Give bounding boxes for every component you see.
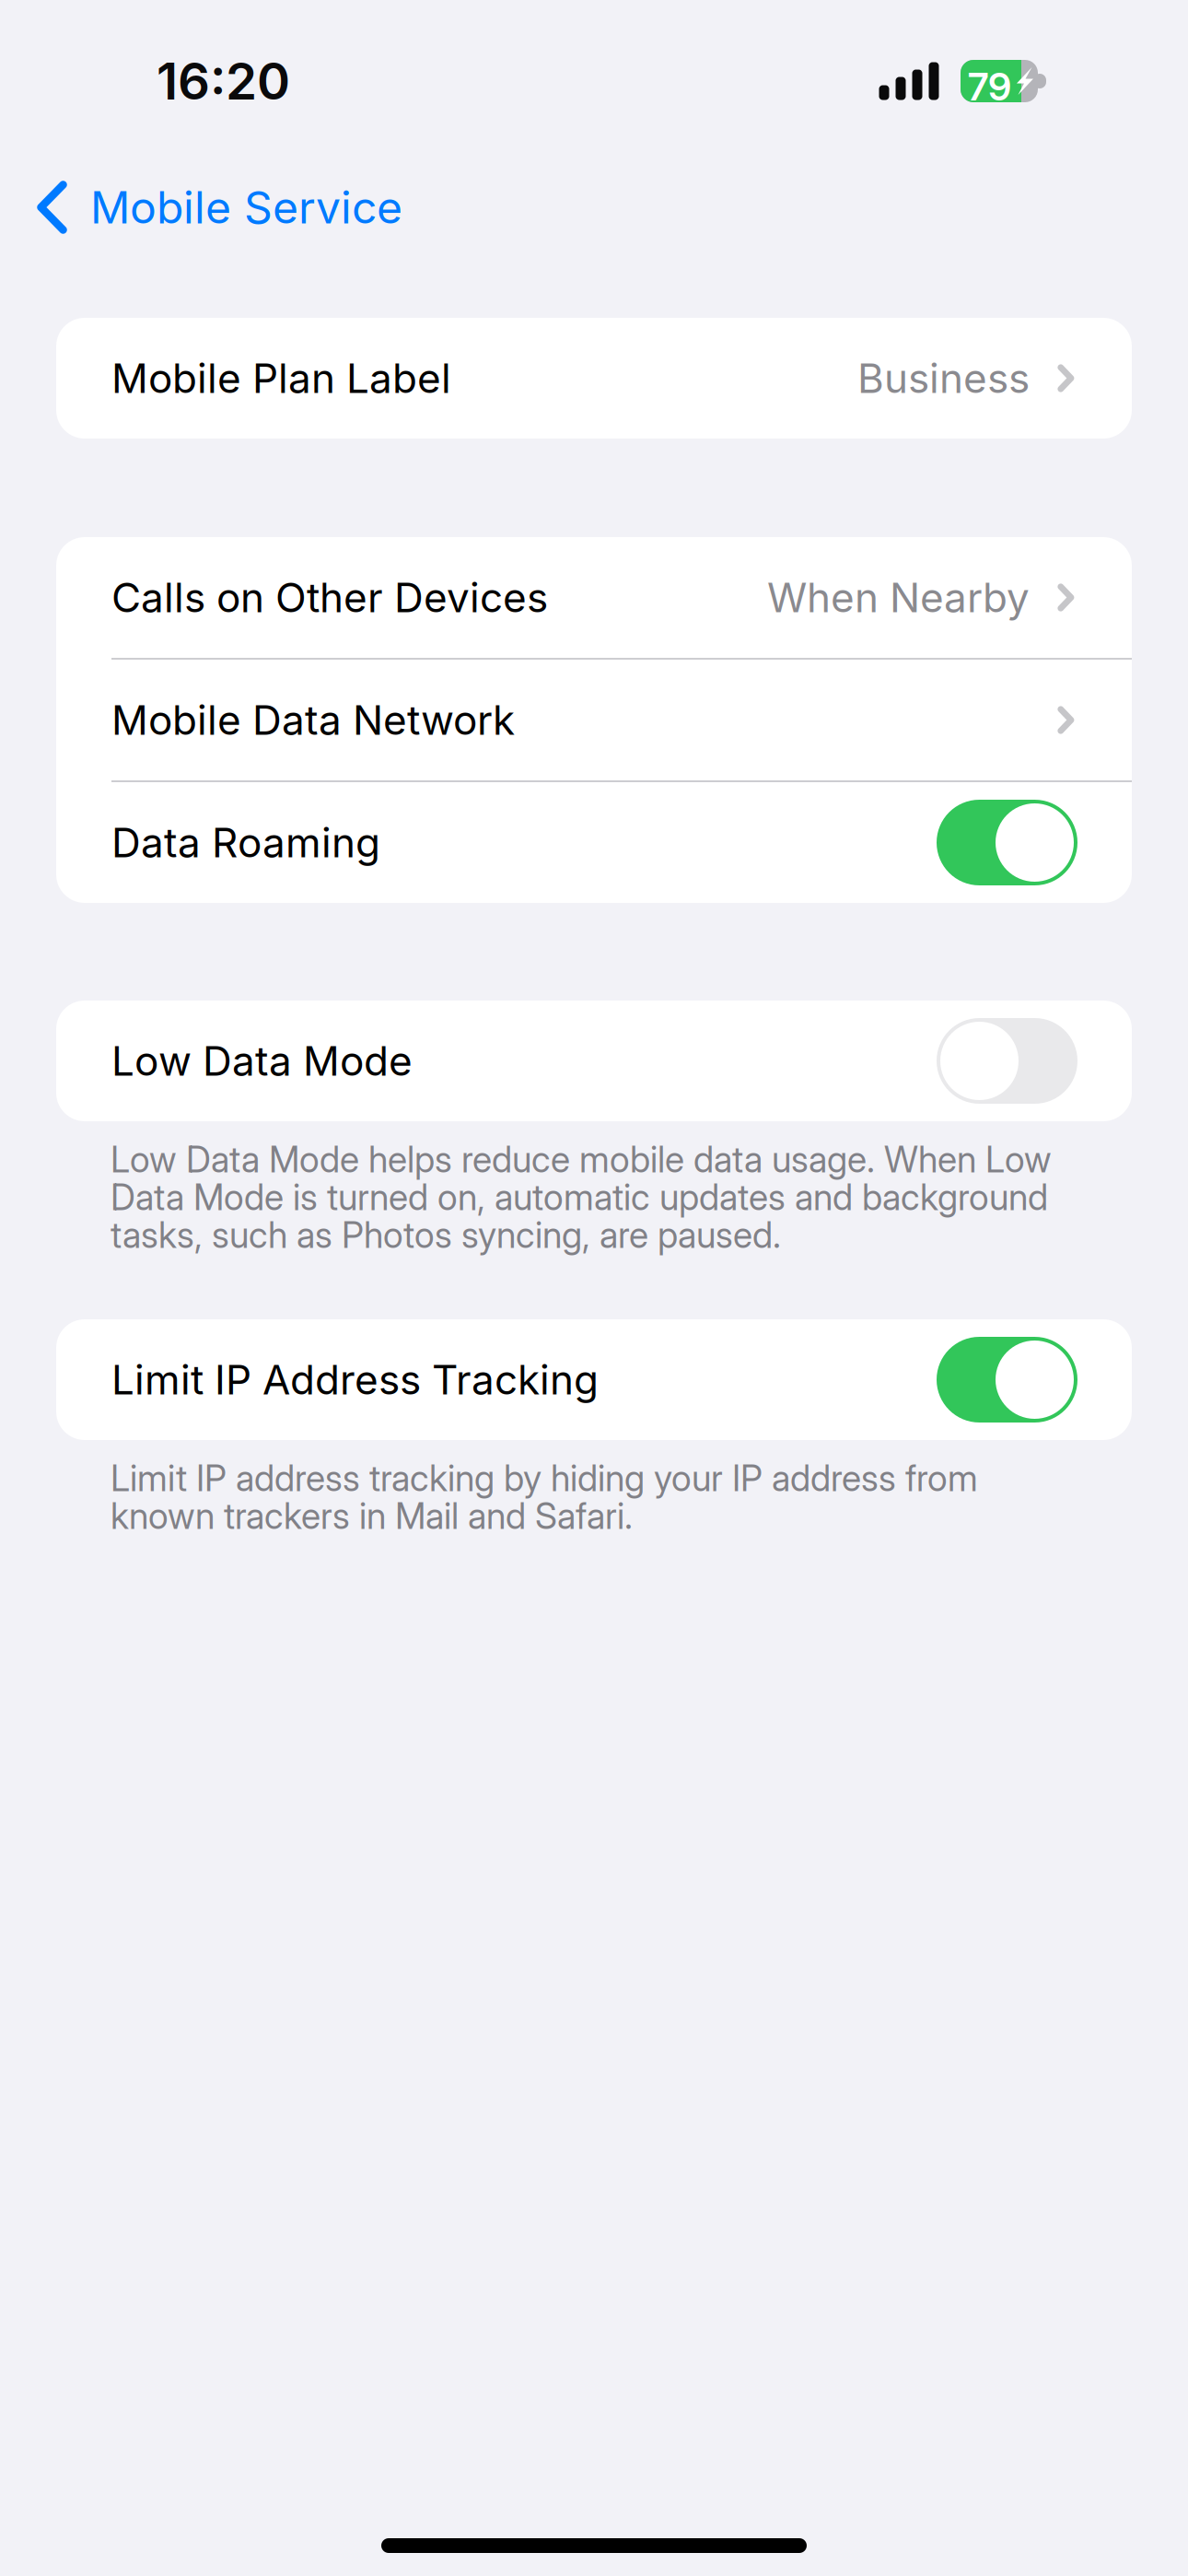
staticText: 79 [968, 64, 1011, 110]
staticText: Low Data Mode [111, 1036, 413, 1085]
staticText: Limit IP address tracking by hiding your… [111, 1457, 978, 1500]
staticText: Business [857, 354, 1030, 403]
staticText: Data Mode is turned on, automatic update… [111, 1176, 1048, 1219]
staticText: Mobile Plan Label [111, 354, 451, 403]
staticText: tasks, such as Photos syncing, are pause… [111, 1213, 781, 1257]
staticText: Low Data Mode helps reduce mobile data u… [111, 1138, 1052, 1181]
staticText: known trackers in Mail and Safari. [111, 1494, 633, 1538]
button[interactable]: Low Data Mode [56, 1001, 1132, 1121]
button[interactable]: Mobile Plan Label [56, 318, 1132, 439]
staticText: Data Roaming [111, 818, 380, 867]
button[interactable]: Calls on Other Devices [56, 537, 1132, 658]
staticText: Limit IP Address Tracking [111, 1355, 599, 1404]
staticText: 16:20 [157, 51, 290, 111]
staticText: Mobile Service [90, 181, 402, 234]
staticText: Calls on Other Devices [111, 573, 548, 622]
staticText: When Nearby [767, 573, 1030, 622]
button[interactable]: Mobile Data Network [56, 660, 1132, 780]
button[interactable]: Limit IP Address Tracking [56, 1319, 1132, 1440]
staticText: Mobile Data Network [111, 696, 515, 745]
button[interactable]: Mobile Service [0, 170, 1188, 244]
button[interactable]: Data Roaming [56, 782, 1132, 903]
